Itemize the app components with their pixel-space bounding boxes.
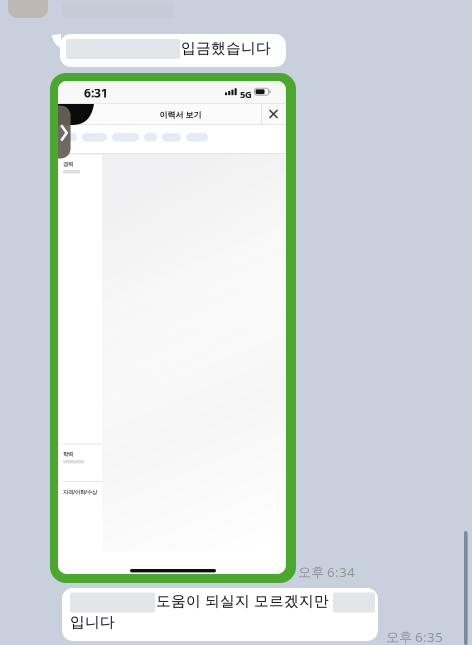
staticText: 입니다 xyxy=(70,613,115,631)
staticText: 오후 6:35 xyxy=(386,628,443,645)
staticText: 도움이 되실지 모르겠지만 xyxy=(156,592,329,610)
button[interactable]: 닫기 xyxy=(261,103,286,125)
staticText: 학력 xyxy=(63,451,73,458)
staticText: 입금했습니다 xyxy=(181,39,271,57)
staticText: 오후 6:34 xyxy=(298,563,355,581)
staticText: 6:31 xyxy=(84,85,108,101)
staticText: 자격/어학/수상 xyxy=(63,488,97,496)
staticText: 5G xyxy=(240,88,252,101)
staticText: 이력서 보기 xyxy=(159,110,201,120)
staticText: 경력 xyxy=(63,161,73,168)
